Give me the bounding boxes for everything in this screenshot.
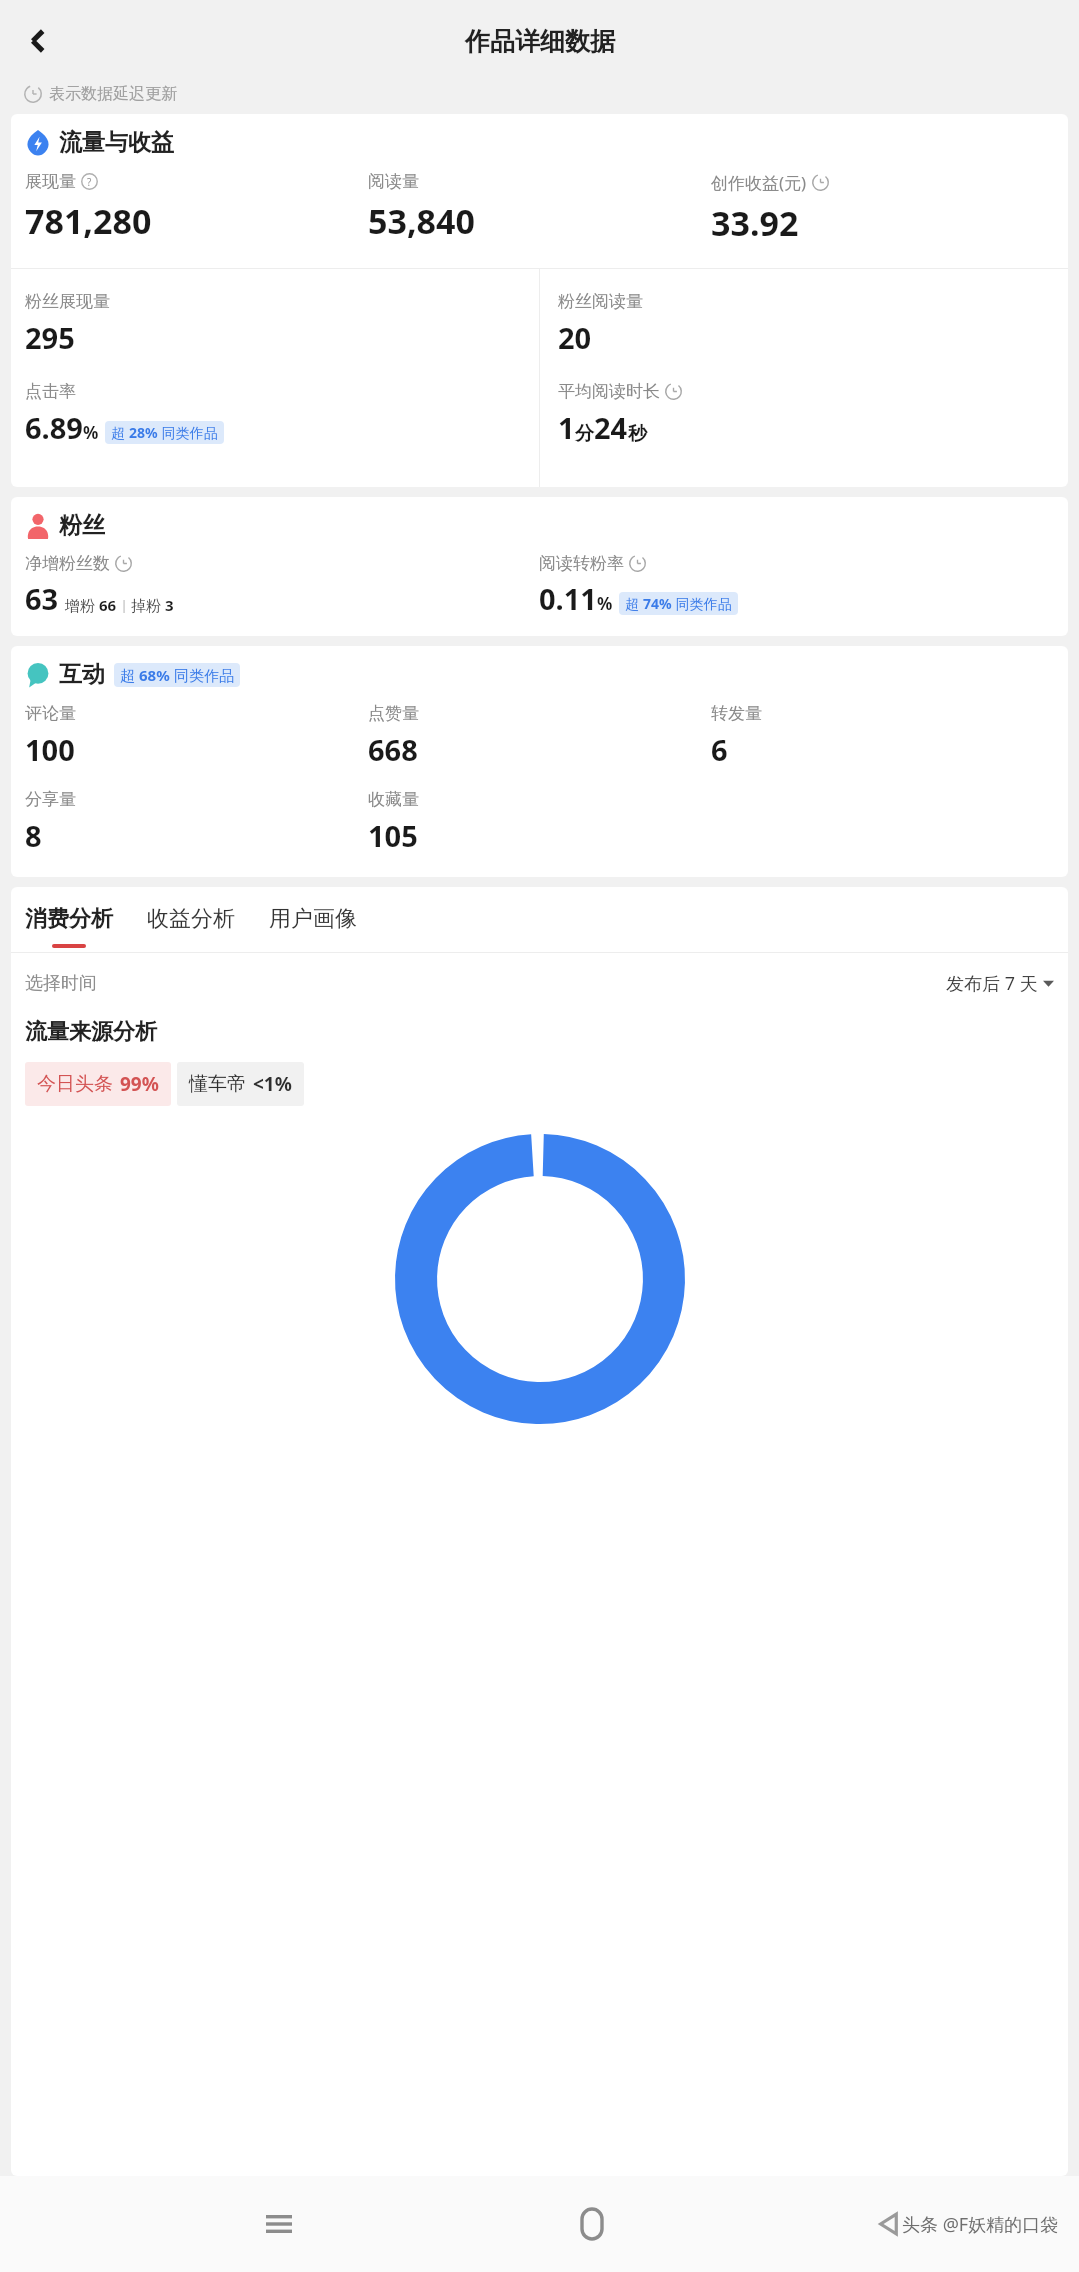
staticText: 295: [25, 318, 75, 357]
staticText: %: [83, 421, 99, 444]
other: 帮助: [81, 173, 98, 190]
staticText: 63: [25, 579, 59, 618]
button[interactable]: 今日头条: [25, 1062, 171, 1106]
staticText: 28%: [129, 423, 158, 442]
staticText: 点赞量: [368, 703, 419, 724]
staticText: 消费分析: [25, 905, 113, 933]
button[interactable]: 懂车帝: [177, 1062, 304, 1106]
staticText: 粉丝展现量: [25, 291, 110, 312]
staticText: 超: [111, 423, 129, 442]
staticText: 用户画像: [269, 905, 357, 933]
staticText: 发布后 7 天: [946, 971, 1038, 996]
staticText: 掉粉: [131, 595, 165, 615]
staticText: 点击率: [25, 381, 76, 402]
staticText: 今日头条: [37, 1072, 113, 1096]
staticText: 8: [25, 816, 42, 855]
button[interactable]: 用户画像: [269, 905, 357, 952]
button[interactable]: 最近任务: [244, 2189, 314, 2259]
staticText: 同类作品: [672, 594, 732, 613]
staticText: 6.89: [25, 408, 83, 447]
staticText: |: [117, 596, 131, 614]
staticText: 阅读转粉率: [539, 553, 624, 574]
button[interactable]: 选择时间: [11, 953, 1068, 996]
button[interactable]: 返回: [870, 2211, 1065, 2237]
staticText: 33.92: [711, 200, 799, 246]
staticText: 781,280: [25, 198, 152, 244]
staticText: 流量与收益: [59, 128, 174, 157]
staticText: 分享量: [25, 789, 76, 810]
staticText: 增粉: [65, 595, 99, 615]
staticText: 6: [711, 730, 728, 769]
staticText: ?: [87, 175, 92, 189]
staticText: 流量来源分析: [25, 1018, 157, 1046]
staticText: 转发量: [711, 703, 762, 724]
staticText: 选择时间: [25, 972, 97, 995]
staticText: 平均阅读时长: [558, 381, 660, 402]
staticText: 3: [165, 595, 174, 615]
staticText: <1%: [253, 1071, 292, 1097]
staticText: 粉丝阅读量: [558, 291, 643, 312]
staticText: 99%: [120, 1071, 159, 1097]
staticText: 同类作品: [158, 423, 218, 442]
staticText: 秒: [628, 422, 647, 446]
staticText: 超: [625, 594, 643, 613]
staticText: 53,840: [368, 198, 475, 244]
staticText: 100: [25, 730, 75, 769]
staticText: 收藏量: [368, 789, 419, 810]
button[interactable]: 消费分析: [25, 905, 113, 952]
button[interactable]: 收益分析: [147, 905, 235, 952]
staticText: 净增粉丝数: [25, 553, 110, 574]
staticText: 超: [120, 665, 139, 685]
staticText: 668: [368, 730, 418, 769]
staticText: 创作收益(元): [711, 171, 807, 194]
staticText: 分: [575, 422, 594, 446]
staticText: 24: [594, 408, 628, 447]
staticText: 同类作品: [170, 665, 234, 685]
staticText: 表示数据延迟更新: [49, 84, 177, 104]
staticText: %: [597, 592, 613, 615]
staticText: 阅读量: [368, 171, 419, 192]
staticText: 74%: [643, 594, 672, 613]
button[interactable]: 返回: [10, 13, 66, 69]
staticText: 互动: [59, 660, 105, 689]
staticText: 粉丝: [59, 511, 105, 540]
staticText: 105: [368, 816, 418, 855]
staticText: 68%: [139, 665, 170, 685]
staticText: 收益分析: [147, 905, 235, 933]
staticText: 20: [558, 318, 592, 357]
staticText: 0.11: [539, 579, 597, 618]
staticText: 作品详细数据: [465, 26, 615, 57]
staticText: 1: [558, 408, 575, 447]
staticText: 懂车帝: [189, 1072, 246, 1096]
staticText: 66: [99, 595, 117, 615]
staticText: 评论量: [25, 703, 76, 724]
staticText: 头条 @F妖精的口袋: [902, 2212, 1059, 2237]
staticText: 展现量: [25, 171, 76, 192]
button[interactable]: 主屏幕: [557, 2189, 627, 2259]
